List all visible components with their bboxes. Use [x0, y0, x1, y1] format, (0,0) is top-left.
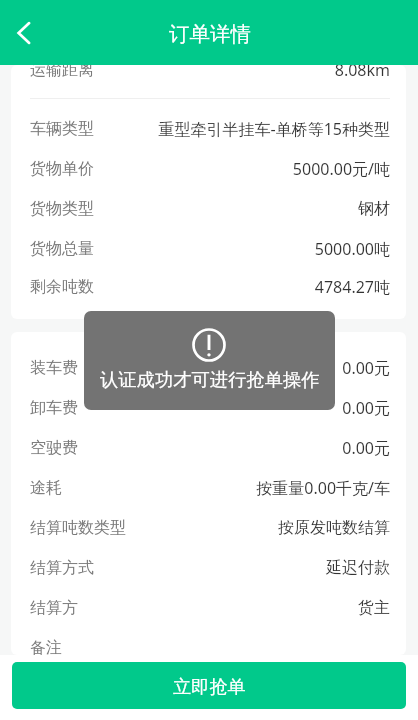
- button[interactable]: 货物类型: [11, 189, 406, 229]
- staticText: 货物总量: [30, 239, 94, 259]
- staticText: 订单详情: [169, 21, 251, 47]
- staticText: 结算吨数类型: [30, 518, 126, 538]
- staticText: 延迟付款: [100, 558, 390, 578]
- button[interactable]: 空驶费: [11, 428, 406, 468]
- staticText: 钢材: [100, 199, 390, 219]
- button[interactable]: 备注: [11, 628, 406, 655]
- button[interactable]: 结算方式: [11, 548, 406, 588]
- button[interactable]: 途耗: [11, 468, 406, 508]
- staticText: 装车费: [30, 358, 78, 378]
- button[interactable]: 装车费: [11, 348, 406, 388]
- button[interactable]: 立即抢单: [12, 662, 406, 709]
- staticText: 货物类型: [30, 199, 94, 219]
- staticText: 0.00元: [84, 357, 390, 379]
- staticText: 运输距离: [30, 65, 94, 80]
- button[interactable]: 结算方: [11, 588, 406, 628]
- staticText: 8.08km: [100, 65, 390, 81]
- staticText: 车辆类型: [30, 119, 94, 139]
- staticText: 认证成功才可进行抢单操作: [100, 368, 320, 391]
- staticText: 按重量0.00千克/车: [68, 477, 390, 499]
- staticText: 5000.00元/吨: [100, 158, 390, 180]
- staticText: 结算方式: [30, 558, 94, 578]
- button[interactable]: Back: [0, 10, 46, 56]
- staticText: 5000.00吨: [100, 238, 390, 260]
- button[interactable]: 货物总量: [11, 229, 406, 269]
- button[interactable]: 结算吨数类型: [11, 508, 406, 548]
- staticText: 卸车费: [30, 398, 78, 418]
- button[interactable]: 运输距离: [11, 65, 406, 90]
- button[interactable]: 卸车费: [11, 388, 406, 428]
- staticText: 货物单价: [30, 159, 94, 179]
- staticText: 重型牵引半挂车-单桥等15种类型: [100, 118, 390, 140]
- staticText: 空驶费: [30, 438, 78, 458]
- staticText: 0.00元: [84, 397, 390, 419]
- staticText: 4784.27吨: [100, 276, 390, 298]
- staticText: 剩余吨数: [30, 277, 94, 297]
- staticText: 0.00元: [84, 437, 390, 459]
- staticText: 途耗: [30, 478, 62, 498]
- staticText: 立即抢单: [173, 675, 246, 698]
- button[interactable]: 剩余吨数: [11, 269, 406, 304]
- staticText: 按原发吨数结算: [132, 518, 390, 538]
- staticText: 备注: [30, 638, 62, 655]
- staticText: 结算方: [30, 598, 78, 618]
- button[interactable]: 车辆类型: [11, 109, 406, 149]
- staticText: 货主: [84, 598, 390, 618]
- button[interactable]: 货物单价: [11, 149, 406, 189]
